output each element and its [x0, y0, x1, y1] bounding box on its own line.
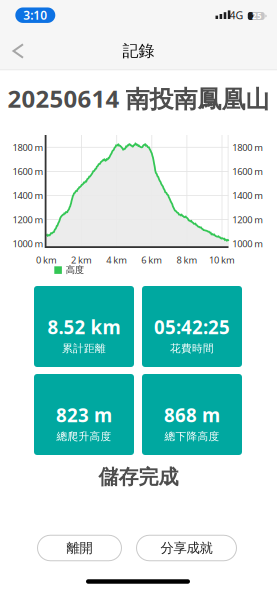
staticText: 6 km	[141, 254, 162, 266]
button[interactable]: 離開	[37, 535, 122, 561]
staticText: 4G	[229, 8, 243, 22]
staticText: 1400 m	[12, 189, 43, 202]
staticText: 868 m	[164, 403, 220, 427]
staticText: 4 km	[106, 254, 127, 266]
staticText: 1000 m	[232, 237, 263, 250]
staticText: 1800 m	[232, 141, 263, 153]
staticText: 高度	[66, 264, 84, 276]
staticText: 1400 m	[232, 189, 263, 202]
staticText: 8 km	[176, 254, 197, 266]
staticText: 823 m	[56, 403, 112, 427]
staticText: 2 km	[71, 254, 92, 266]
button[interactable]: 823 m	[34, 374, 134, 455]
staticText: 總下降高度	[164, 430, 219, 443]
staticText: 10 km	[209, 254, 235, 266]
button[interactable]: 868 m	[142, 374, 242, 455]
button[interactable]	[0, 0, 277, 600]
staticText: 累計距離	[62, 342, 106, 355]
staticText: 離開	[66, 540, 92, 556]
staticText: 1600 m	[12, 165, 43, 178]
staticText: 20250614 南投南鳳凰山	[7, 83, 269, 114]
staticText: 3:10	[23, 7, 47, 23]
staticText: 1200 m	[232, 213, 263, 226]
button[interactable]: 8.52 km	[34, 286, 134, 367]
staticText: 總爬升高度	[56, 430, 111, 443]
staticText: 1000 m	[12, 237, 43, 250]
staticText: 05:42:25	[154, 315, 230, 339]
staticText: 1200 m	[12, 213, 43, 226]
staticText: 花費時間	[170, 342, 214, 355]
staticText: 25	[252, 11, 262, 21]
staticText: 8.52 km	[47, 315, 120, 339]
button[interactable]: 05:42:25	[142, 286, 242, 367]
staticText: 儲存完成	[98, 465, 178, 489]
staticText: 1800 m	[12, 141, 43, 153]
button[interactable]: 分享成就	[136, 535, 237, 561]
staticText: 分享成就	[160, 540, 212, 556]
staticText: 記錄	[122, 41, 154, 61]
staticText: 1600 m	[232, 165, 263, 178]
staticText: 0 km	[36, 254, 57, 266]
